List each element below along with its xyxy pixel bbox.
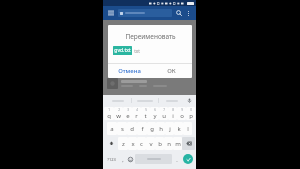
button[interactable]: Enter (183, 154, 193, 164)
button[interactable]: 5 (141, 107, 150, 120)
staticText: 3 (127, 108, 129, 112)
button[interactable]: 7 (159, 107, 168, 120)
button[interactable]: Shift (104, 137, 118, 150)
staticText: w (116, 112, 121, 120)
button[interactable]: l (183, 122, 192, 135)
button[interactable]: . (173, 151, 180, 167)
staticText: q (107, 112, 111, 120)
button[interactable]: a (107, 122, 117, 135)
button[interactable]: x (128, 137, 137, 150)
button[interactable]: 1 (104, 107, 114, 120)
staticText: ?123 (107, 157, 116, 162)
staticText: 6 (154, 108, 156, 112)
staticText: 7 (163, 108, 165, 112)
staticText: y (153, 112, 157, 120)
staticText: g (150, 125, 154, 133)
staticText: v (149, 140, 153, 148)
staticText: 1 (108, 108, 110, 112)
staticText: b (158, 140, 162, 148)
button[interactable]: Search (174, 8, 184, 18)
staticText: 5 (145, 108, 147, 112)
button[interactable]: Voice input (185, 95, 194, 106)
button[interactable]: More options (184, 9, 193, 18)
button[interactable]: c (137, 137, 146, 150)
button[interactable]: 8 (168, 107, 177, 120)
button[interactable]: h (156, 122, 165, 135)
button[interactable]: z (118, 137, 128, 150)
button[interactable] (105, 95, 131, 106)
staticText: i (172, 112, 174, 120)
button[interactable]: g (147, 122, 156, 135)
button[interactable]: b (155, 137, 164, 150)
staticText: k (177, 125, 181, 133)
staticText: ОК (167, 67, 176, 75)
button[interactable]: v (146, 137, 155, 150)
button[interactable]: , (119, 151, 126, 167)
button[interactable]: 9 (177, 107, 186, 120)
staticText: Отмена (118, 67, 141, 75)
button[interactable]: 2 (114, 107, 123, 120)
staticText: f (141, 125, 144, 133)
staticText: 2 (118, 108, 120, 112)
staticText: p (189, 112, 193, 120)
staticText: r (135, 112, 138, 120)
staticText: o (180, 112, 184, 120)
staticText: n (167, 140, 171, 148)
staticText: 9 (181, 108, 183, 112)
staticText: s (121, 125, 124, 133)
staticText: . (176, 156, 178, 163)
button[interactable]: f (137, 122, 147, 135)
staticText: t (144, 112, 147, 120)
staticText: j (169, 125, 171, 133)
staticText: gvd.txt (114, 47, 131, 54)
button[interactable]: Space (135, 154, 172, 164)
staticText: a (110, 125, 114, 133)
button[interactable]: m (173, 137, 182, 150)
staticText: x (131, 140, 135, 148)
button[interactable]: d (127, 122, 137, 135)
button[interactable]: j (165, 122, 174, 135)
staticText: 0 (190, 108, 192, 112)
staticText: Переименовать (125, 32, 176, 41)
button[interactable]: 3 (123, 107, 132, 120)
button[interactable]: 0 (186, 107, 195, 120)
button[interactable]: k (174, 122, 183, 135)
button[interactable] (132, 95, 158, 106)
staticText: 4 (136, 108, 138, 112)
staticText: txt (134, 48, 140, 54)
button[interactable]: Emoji (126, 151, 134, 167)
button[interactable] (118, 9, 172, 17)
button[interactable] (159, 95, 185, 106)
button[interactable]: Open navigation menu (106, 8, 116, 18)
staticText: z (122, 140, 125, 148)
staticText: c (140, 140, 143, 148)
button[interactable]: ?123 (104, 153, 119, 165)
staticText: d (130, 125, 134, 133)
staticText: m (175, 140, 181, 148)
staticText: 8 (172, 108, 174, 112)
button[interactable]: Backspace (182, 137, 195, 150)
button[interactable]: s (117, 122, 127, 135)
button[interactable]: ОК (150, 64, 192, 78)
staticText: , (122, 156, 124, 163)
staticText: u (162, 112, 166, 120)
staticText: e (126, 112, 130, 120)
button[interactable]: 6 (150, 107, 159, 120)
button[interactable]: 4 (132, 107, 141, 120)
staticText: l (187, 125, 189, 133)
button[interactable]: n (164, 137, 173, 150)
staticText: h (159, 125, 163, 133)
button[interactable]: Отмена (108, 64, 150, 78)
button[interactable] (103, 74, 196, 92)
